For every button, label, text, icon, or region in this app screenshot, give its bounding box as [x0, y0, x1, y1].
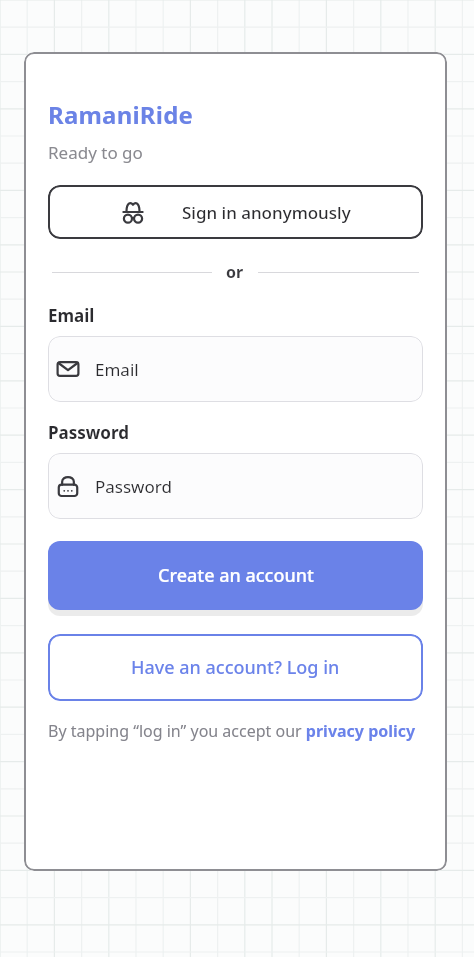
staticText: Password	[95, 475, 172, 498]
button[interactable]: Email	[48, 336, 423, 402]
staticText: Create an account	[158, 563, 314, 588]
button[interactable]: By tapping “log in” you accept our priva…	[48, 720, 423, 742]
other: Email	[55, 356, 81, 382]
other: Password	[55, 473, 81, 499]
staticText: or	[226, 261, 244, 283]
staticText: Password	[48, 421, 129, 444]
button[interactable]: Have an account? Log in	[48, 634, 423, 701]
button[interactable]: Incognito	[48, 185, 423, 239]
button[interactable]: Create an account	[48, 541, 423, 610]
staticText: RamaniRide	[48, 98, 194, 131]
staticText: Have an account? Log in	[131, 655, 340, 680]
staticText: Sign in anonymously	[182, 201, 351, 224]
staticText: Ready to go	[48, 141, 143, 164]
staticText: Email	[95, 358, 139, 381]
other: Incognito	[120, 199, 146, 225]
button[interactable]: Password	[48, 453, 423, 519]
staticText: Email	[48, 304, 95, 327]
